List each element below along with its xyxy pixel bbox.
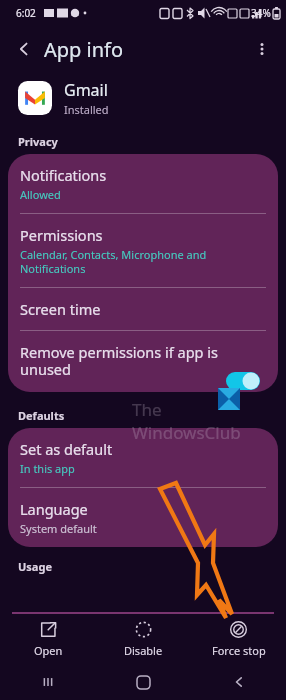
staticText: Force stop [212, 643, 266, 658]
button[interactable]: Gmail [0, 72, 286, 124]
staticText: Notifications [20, 165, 107, 185]
staticText: Gmail [64, 79, 108, 101]
staticText: Disable [124, 643, 163, 658]
button[interactable]: More options [244, 31, 280, 67]
staticText: Remove permissions if app is unused [20, 342, 266, 379]
staticText: Set as default [20, 439, 113, 459]
button[interactable]: Permissions [8, 214, 278, 287]
button[interactable]: Open [0, 614, 96, 664]
button[interactable]: Force stop [191, 614, 286, 664]
staticText: Screen time [20, 299, 101, 319]
button[interactable]: Recents [0, 664, 96, 700]
button[interactable]: Home [96, 664, 191, 700]
staticText: Usage [18, 559, 52, 574]
button[interactable]: Notifications [8, 154, 278, 213]
staticText: Calendar, Contacts, Microphone and Notif… [20, 247, 207, 276]
staticText: In this app [20, 461, 75, 476]
button[interactable]: Language [8, 488, 278, 547]
staticText: App info [44, 36, 124, 63]
staticText: WindowsClub [132, 421, 241, 444]
staticText: 34% [251, 6, 271, 20]
staticText: Permissions [20, 225, 103, 245]
button[interactable]: Remove permissions if app is unused [8, 331, 278, 392]
staticText: Open [34, 643, 63, 658]
button[interactable]: Back [191, 664, 286, 700]
staticText: The [132, 398, 162, 421]
staticText: Defaults [18, 408, 65, 423]
staticText: Installed [64, 102, 109, 117]
button[interactable]: Disable [96, 614, 191, 664]
staticText: 6:02 [16, 6, 36, 20]
button[interactable]: Set as default [8, 428, 278, 487]
button[interactable]: Back [6, 31, 42, 67]
button[interactable]: Screen time [8, 288, 278, 330]
staticText: Allowed [20, 187, 61, 202]
staticText: Language [20, 499, 88, 519]
staticText: System default [20, 521, 97, 536]
staticText: Privacy [18, 134, 58, 149]
